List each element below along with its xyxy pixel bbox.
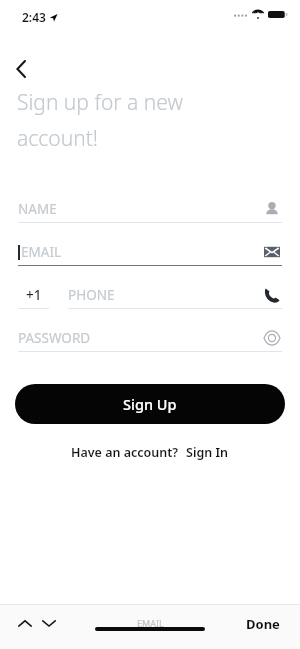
- staticText: Sign Up: [123, 394, 177, 414]
- button[interactable]: Done: [246, 615, 280, 633]
- staticText: PASSWORD: [18, 329, 91, 347]
- other: Phone: [262, 285, 282, 305]
- staticText: Sign up for a new: [17, 88, 183, 117]
- staticText: PHONE: [68, 286, 115, 304]
- other: PASSWORD: [262, 328, 282, 348]
- staticText: EMAIL: [21, 243, 62, 261]
- staticText: NAME: [18, 200, 57, 218]
- button[interactable]: Have an account?: [71, 444, 229, 461]
- button[interactable]: EMAIL: [18, 238, 282, 266]
- button[interactable]: Previous field: [12, 611, 38, 637]
- staticText: EMAIL: [137, 617, 164, 629]
- button[interactable]: +1: [18, 282, 49, 308]
- button[interactable]: PASSWORD: [18, 324, 282, 352]
- button[interactable]: PHONE: [68, 282, 262, 308]
- staticText: Have an account?: [71, 444, 179, 461]
- staticText: Done: [246, 615, 280, 633]
- button[interactable]: Back: [6, 50, 40, 84]
- button[interactable]: Next field: [36, 611, 62, 637]
- button[interactable]: Sign Up: [15, 384, 285, 424]
- staticText: Sign In: [186, 444, 229, 461]
- other: Email: [262, 242, 282, 262]
- staticText: +1: [26, 286, 42, 304]
- button[interactable]: NAME: [18, 195, 282, 223]
- staticText: account!: [17, 124, 98, 153]
- other: NAME: [262, 199, 282, 219]
- staticText: 2:43: [22, 9, 46, 25]
